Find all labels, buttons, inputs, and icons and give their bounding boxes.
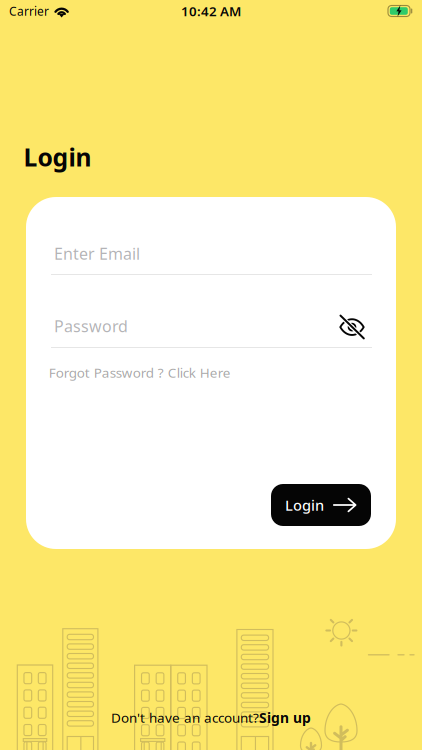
- staticText: Forgot Password ? Click Here: [49, 363, 231, 382]
- button[interactable]: Sign up: [259, 708, 311, 727]
- button[interactable]: Login: [271, 484, 371, 526]
- staticText: Enter Email: [54, 243, 140, 264]
- staticText: Sign up: [259, 708, 311, 727]
- staticText: Login: [23, 140, 91, 174]
- staticText: 10:42 AM: [181, 2, 241, 20]
- staticText: Login: [285, 495, 324, 515]
- staticText: Carrier: [9, 3, 49, 19]
- button[interactable]: Forgot Password ? Click Here: [49, 360, 231, 385]
- staticText: Password: [54, 315, 128, 337]
- button[interactable]: Show password: [333, 308, 371, 345]
- staticText: Don't have an account?: [111, 708, 259, 727]
